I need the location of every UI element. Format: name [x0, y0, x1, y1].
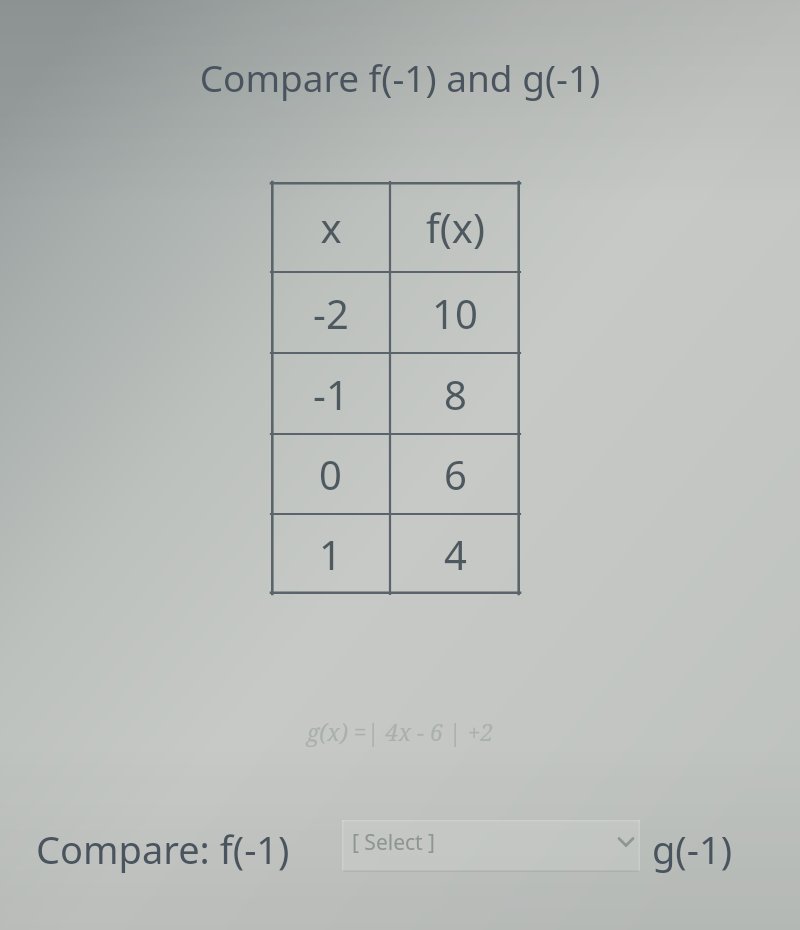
- staticText: 8: [444, 367, 467, 421]
- staticText: f(x): [426, 200, 485, 254]
- staticText: 6: [444, 447, 467, 501]
- button[interactable]: 0: [271, 434, 390, 514]
- staticText: Compare: f(-1): [36, 823, 290, 875]
- staticText: [ Select ]: [352, 828, 436, 857]
- staticText: -1: [313, 367, 349, 421]
- button[interactable]: -1: [271, 353, 390, 434]
- staticText: x: [320, 200, 342, 254]
- button[interactable]: 10: [390, 272, 520, 353]
- button[interactable]: x: [271, 182, 390, 272]
- button[interactable]: -2: [271, 272, 390, 353]
- staticText: g(-1): [652, 823, 733, 875]
- staticText: 10: [432, 286, 478, 340]
- button[interactable]: Compare: f(-1): [36, 820, 290, 878]
- button[interactable]: Select comparison operator: [342, 820, 640, 872]
- button[interactable]: f(x): [390, 182, 520, 272]
- button[interactable]: 6: [390, 434, 520, 514]
- staticText: g(x) =| 4x − 6 | +2: [0, 716, 800, 747]
- button[interactable]: 4: [390, 514, 520, 594]
- staticText: Compare f(-1) and g(-1): [0, 52, 800, 102]
- staticText: -2: [313, 286, 349, 340]
- button[interactable]: 8: [390, 353, 520, 434]
- button[interactable]: 1: [271, 514, 390, 594]
- staticText: 0: [319, 447, 342, 501]
- staticText: 4: [444, 527, 467, 581]
- staticText: 1: [319, 527, 342, 581]
- button[interactable]: g(-1): [652, 820, 733, 878]
